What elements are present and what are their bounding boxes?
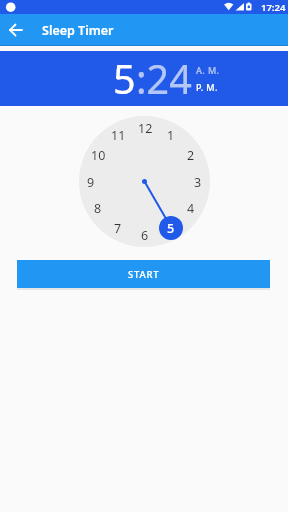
staticText: 7 [114, 220, 122, 237]
staticText: :24 [136, 52, 192, 106]
staticText: 3 [194, 174, 202, 191]
button[interactable] [0, 14, 32, 46]
staticText: START [128, 268, 160, 281]
staticText: 5 [113, 52, 136, 106]
staticText: A. M. [196, 64, 220, 76]
staticText: Sleep Timer [42, 22, 114, 39]
staticText: 12 [138, 120, 153, 137]
button[interactable]: P. M. [196, 81, 218, 93]
staticText: 6 [141, 227, 149, 244]
staticText: 1 [167, 127, 175, 144]
staticText: 11 [111, 127, 126, 144]
staticText: 9 [87, 174, 95, 191]
staticText: 17:24 [261, 1, 286, 14]
staticText: 10 [91, 147, 106, 164]
staticText: 4 [187, 200, 195, 217]
staticText: 5 [167, 220, 175, 237]
button[interactable]: A. M. [196, 64, 220, 76]
staticText: 2 [187, 147, 195, 164]
staticText: P. M. [196, 81, 218, 93]
button[interactable]: START [17, 260, 270, 288]
staticText: 8 [94, 200, 102, 217]
